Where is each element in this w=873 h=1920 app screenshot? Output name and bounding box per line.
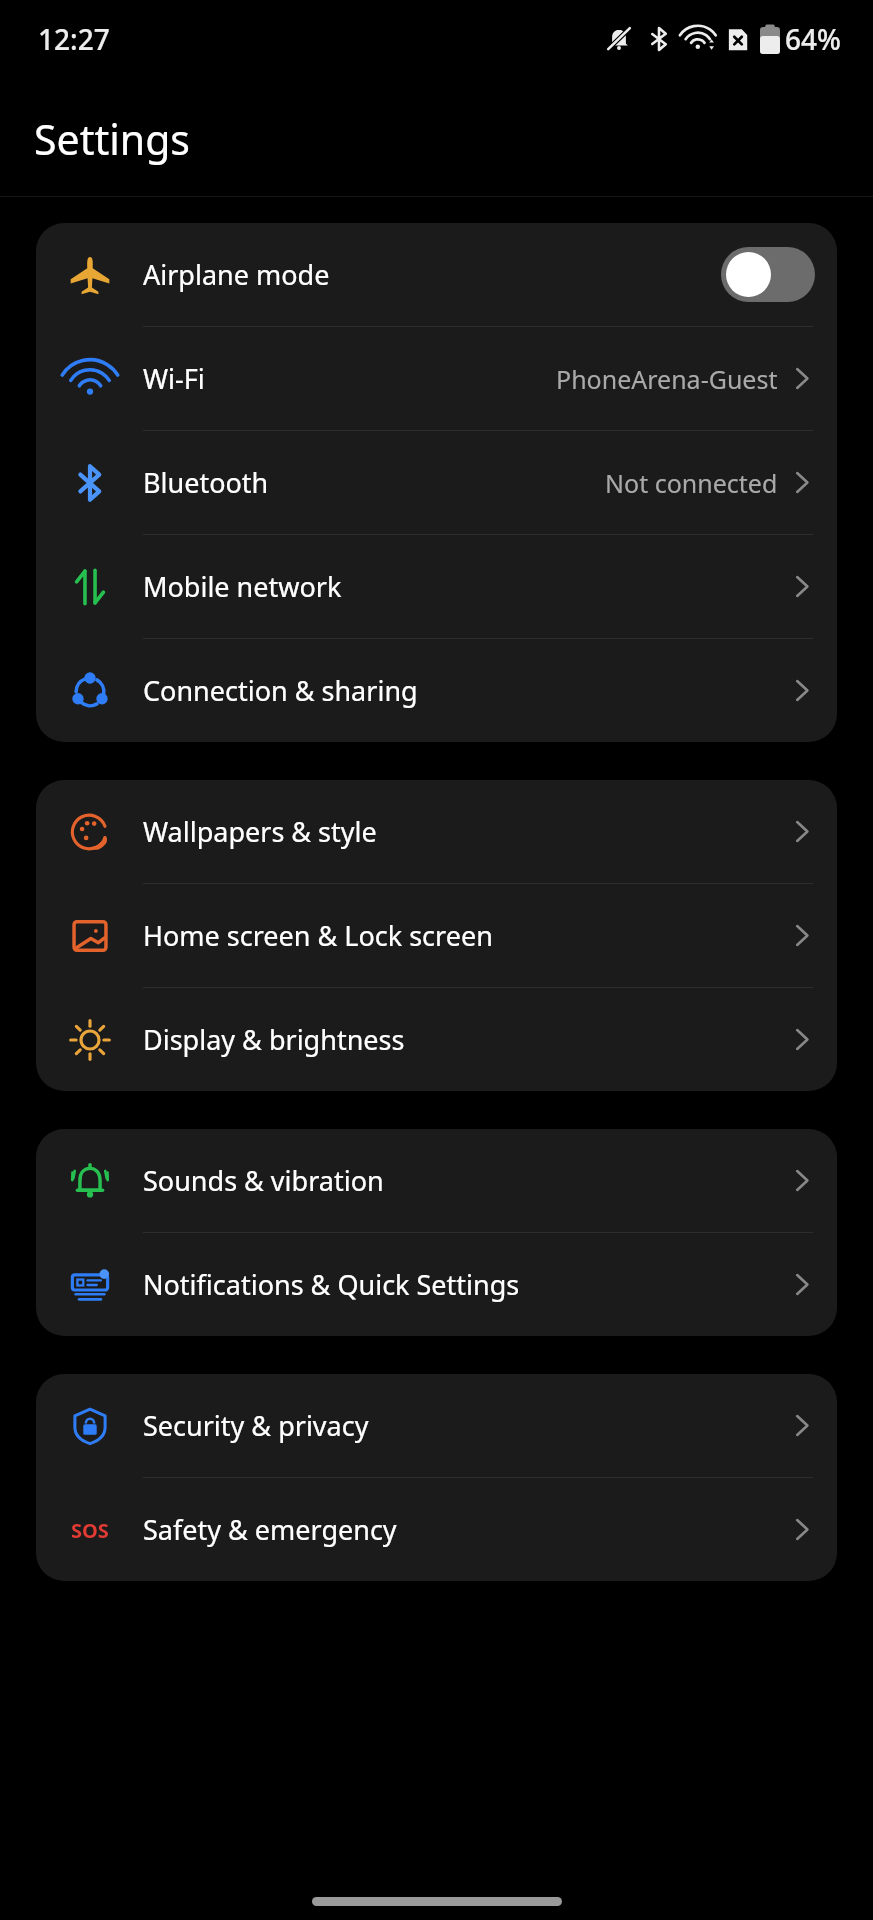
staticText: SOS xyxy=(71,1517,109,1544)
staticText: Connection & sharing xyxy=(143,672,418,709)
button[interactable]: Notifications & Quick Settings xyxy=(36,1233,837,1336)
button[interactable]: Airplane mode toggle xyxy=(721,247,815,302)
button[interactable]: Bluetooth xyxy=(36,431,837,534)
staticText: Wi-Fi xyxy=(143,360,205,397)
staticText: PhoneArena-Guest xyxy=(556,362,778,396)
button[interactable]: Home screen & Lock screen xyxy=(36,884,837,987)
staticText: 12:27 xyxy=(38,20,110,58)
button[interactable]: Display & brightness xyxy=(36,988,837,1091)
button[interactable]: SOS xyxy=(36,1478,837,1581)
staticText: Sounds & vibration xyxy=(143,1162,384,1199)
staticText: Bluetooth xyxy=(143,464,269,501)
button[interactable]: Mobile network xyxy=(36,535,837,638)
staticText: Mobile network xyxy=(143,568,342,605)
button[interactable]: Security & privacy xyxy=(36,1374,837,1477)
staticText: Airplane mode xyxy=(143,256,330,293)
staticText: Not connected xyxy=(605,466,778,500)
button[interactable]: Connection & sharing xyxy=(36,639,837,742)
staticText: Safety & emergency xyxy=(143,1511,397,1548)
staticText: Home screen & Lock screen xyxy=(143,917,493,954)
button[interactable]: Sounds & vibration xyxy=(36,1129,837,1232)
staticText: Notifications & Quick Settings xyxy=(143,1266,520,1303)
staticText: Display & brightness xyxy=(143,1021,405,1058)
staticText: Security & privacy xyxy=(143,1407,369,1444)
button[interactable]: Wi-Fi xyxy=(36,327,837,430)
staticText: Settings xyxy=(34,111,191,167)
staticText: 64% xyxy=(785,20,841,58)
staticText: Wallpapers & style xyxy=(143,813,377,850)
button[interactable]: Airplane mode xyxy=(36,223,837,326)
button[interactable]: Wallpapers & style xyxy=(36,780,837,883)
